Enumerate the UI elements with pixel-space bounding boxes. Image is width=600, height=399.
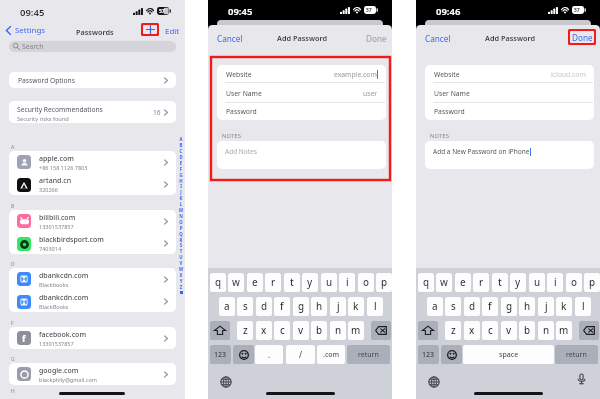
button[interactable]: f [482,297,498,316]
button[interactable]: k [348,297,364,316]
button[interactable]: a [219,297,235,316]
button[interactable]: j [330,297,346,316]
button[interactable]: l [575,297,591,316]
button[interactable]: i [547,273,563,292]
button[interactable]: t [284,273,300,292]
button[interactable]: Password Options [9,72,176,88]
button[interactable]: n [538,321,554,340]
button[interactable]: q [418,273,434,292]
button[interactable]: m [348,321,364,340]
button[interactable]: o [358,273,374,292]
button[interactable]: Password [217,102,386,120]
button[interactable]: Cancel [217,33,243,44]
button[interactable]: u [529,273,545,292]
button[interactable]: n [330,321,346,340]
button[interactable]: . [255,345,283,364]
button[interactable]: p [376,273,392,292]
button[interactable]: w [436,273,452,292]
button[interactable]: artand.cn [9,174,176,195]
button[interactable]: l [367,297,383,316]
button[interactable]: e [455,273,471,292]
button[interactable]: Return [347,345,390,364]
button[interactable]: Password [425,102,594,120]
button[interactable]: Website [217,65,386,83]
button[interactable]: s [445,297,461,316]
button[interactable]: v [293,321,309,340]
button[interactable]: b [519,321,535,340]
button[interactable]: o [566,273,582,292]
button[interactable]: dbankcdn.com [9,268,176,290]
button[interactable]: p [584,273,600,292]
button[interactable]: Cancel [425,33,451,44]
button[interactable]: f [274,297,290,316]
button[interactable]: h [519,297,535,316]
button[interactable]: r [265,273,281,292]
button[interactable]: Emoji [233,345,254,364]
button[interactable]: Security Recommendations [9,101,176,123]
button[interactable]: x [464,321,480,340]
button[interactable]: Shift [418,321,438,340]
button[interactable]: User Name [217,83,386,103]
staticText: .com [323,350,340,360]
button[interactable]: Shift [210,321,230,340]
button[interactable]: g [501,297,517,316]
button[interactable]: / [286,345,315,364]
staticText: 123 [214,350,227,360]
button[interactable]: v [501,321,517,340]
button[interactable]: Backspace [579,321,599,340]
button[interactable]: h [311,297,327,316]
button[interactable]: Emoji [441,345,462,364]
button[interactable]: i [339,273,355,292]
button[interactable]: k [556,297,572,316]
button[interactable]: Done [366,33,387,44]
button[interactable]: Add Notes [217,141,386,169]
button[interactable]: blackbirdsport.com [9,233,176,254]
button[interactable]: z [445,321,461,340]
button[interactable]: b [311,321,327,340]
button[interactable]: Change keyboard [428,376,440,388]
button[interactable]: a [427,297,443,316]
button[interactable]: Numbers [210,345,231,364]
button[interactable]: Done [570,31,594,43]
button[interactable]: Add a New Password on iPhone [425,141,594,169]
button[interactable]: Backspace [371,321,391,340]
button[interactable]: g [293,297,309,316]
button[interactable]: t [492,273,508,292]
button[interactable]: u [321,273,337,292]
button[interactable]: Numbers [418,345,439,364]
button[interactable]: y [302,273,318,292]
button[interactable]: Change keyboard [220,376,232,388]
staticText: Y [178,278,184,284]
button[interactable]: y [510,273,526,292]
button[interactable]: f [9,327,176,349]
button[interactable]: Search [9,41,176,52]
button[interactable]: Edit [165,26,180,37]
button[interactable]: w [228,273,244,292]
button[interactable]: Website [425,65,594,83]
button[interactable]: d [464,297,480,316]
button[interactable]: apple.com [9,151,176,173]
button[interactable]: space [463,345,554,364]
button[interactable]: google.com [9,363,176,385]
button[interactable]: q [210,273,226,292]
button[interactable]: j [538,297,554,316]
staticText: K [178,195,184,201]
button[interactable]: c [482,321,498,340]
button[interactable]: d [256,297,272,316]
button[interactable]: User Name [425,83,594,103]
button[interactable]: s [237,297,253,316]
button[interactable]: e [247,273,263,292]
button[interactable]: bilibili.com [9,210,176,232]
button[interactable]: .com [317,345,345,364]
button[interactable]: Dictate [575,373,587,385]
button[interactable]: Settings [6,24,46,36]
button[interactable]: m [556,321,572,340]
button[interactable]: dbankcdn.com [9,291,176,312]
button[interactable]: r [473,273,489,292]
button[interactable]: x [256,321,272,340]
button[interactable]: c [274,321,290,340]
button[interactable]: Add password [143,25,157,34]
button[interactable]: Return [555,345,598,364]
staticText: D [11,261,15,268]
button[interactable]: z [237,321,253,340]
